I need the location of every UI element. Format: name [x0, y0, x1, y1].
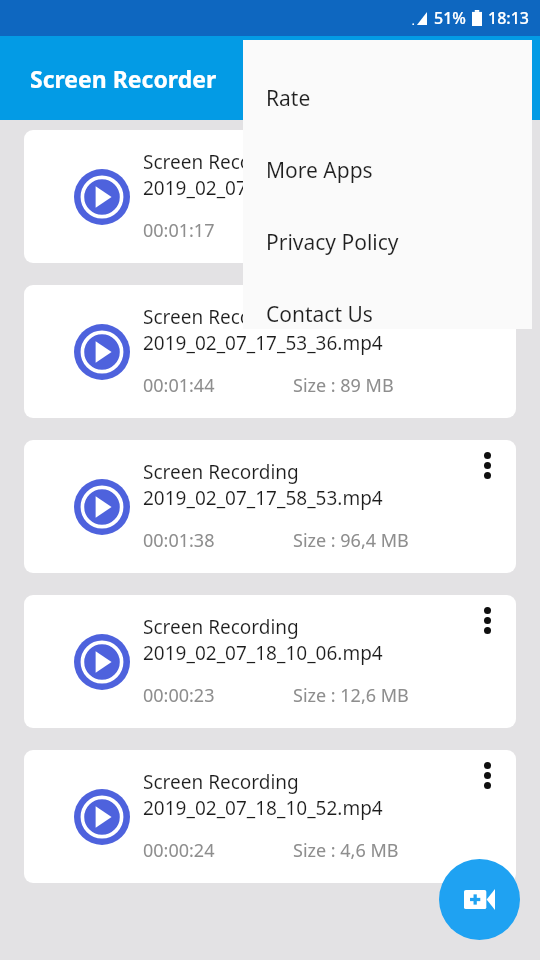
staticText: Screen Recording 2019_02_07_17_53_36.mp4 — [143, 304, 383, 355]
staticText: 00:01:17 — [143, 218, 215, 243]
staticText: Size : 4,6 MB — [293, 838, 399, 863]
staticText: Screen Recording 2019_02_07_18_10_06.mp4 — [143, 614, 383, 665]
staticText: More Apps — [266, 156, 373, 185]
button[interactable]: Screen Recording 2019_02_07_17_58_53.mp4 — [24, 440, 516, 573]
staticText: 00:00:23 — [143, 683, 215, 708]
staticText: 00:00:24 — [143, 838, 215, 863]
button[interactable]: Screen Recording 2019_02_07_17_53_36.mp4 — [24, 285, 516, 418]
button[interactable]: Rate — [243, 62, 532, 134]
staticText: Rate — [266, 84, 311, 113]
staticText: 18:13 — [488, 7, 529, 29]
button[interactable]: Screen Recording 2019_02_07_17_49_40.mp4 — [24, 130, 516, 263]
staticText: Size : 96,4 MB — [293, 528, 409, 553]
staticText: Screen Recording 2019_02_07_17_49_40.mp4 — [143, 149, 383, 200]
staticText: Size : 89 MB — [293, 373, 394, 398]
button[interactable]: Screen Recording 2019_02_07_18_10_52.mp4 — [24, 750, 516, 883]
staticText: 00:01:44 — [143, 373, 215, 398]
button[interactable]: New recording — [439, 859, 520, 940]
staticText: Size : 12,6 MB — [293, 683, 409, 708]
staticText: Screen Recorder — [30, 63, 217, 94]
staticText: Privacy Policy — [266, 228, 399, 257]
button[interactable]: More options — [464, 597, 510, 643]
staticText: Size : 63 MB — [293, 218, 394, 243]
button[interactable]: Privacy Policy — [243, 206, 532, 278]
staticText: Contact Us — [266, 300, 373, 329]
button[interactable]: More Apps — [243, 134, 532, 206]
button[interactable]: More options — [464, 442, 510, 488]
staticText: Screen Recording 2019_02_07_17_58_53.mp4 — [143, 459, 383, 510]
button[interactable]: Screen Recording 2019_02_07_18_10_06.mp4 — [24, 595, 516, 728]
staticText: Screen Recording 2019_02_07_18_10_52.mp4 — [143, 769, 383, 820]
staticText: 51% — [434, 7, 466, 29]
button[interactable]: Contact Us — [243, 278, 532, 350]
staticText: 00:01:38 — [143, 528, 215, 553]
button[interactable]: More options — [464, 752, 510, 798]
